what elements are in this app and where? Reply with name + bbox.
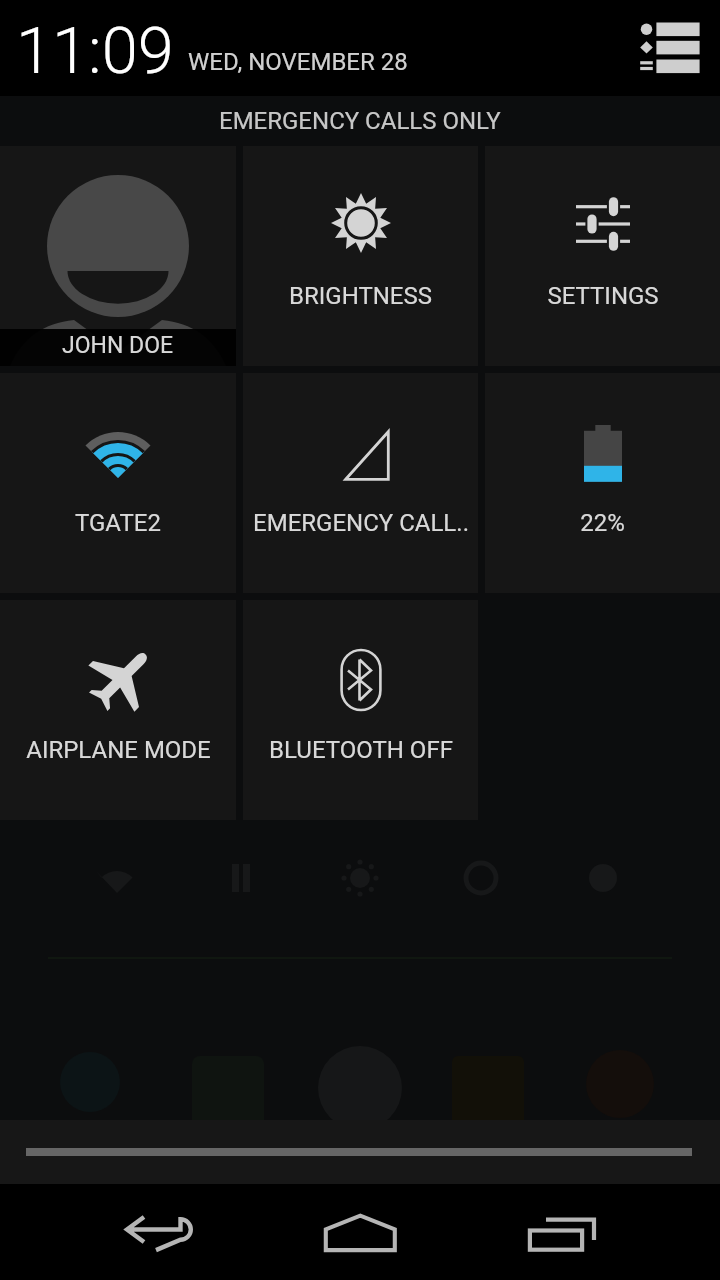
- button[interactable]: Notifications: [632, 10, 708, 86]
- button[interactable]: TGATE2: [0, 373, 236, 593]
- staticText: JOHN DOE: [62, 332, 174, 359]
- button[interactable]: EMERGENCY CALL..: [243, 373, 478, 593]
- staticText: BLUETOOTH OFF: [269, 736, 453, 764]
- button[interactable]: 22%: [485, 373, 720, 593]
- button[interactable]: Home: [300, 1184, 420, 1280]
- button[interactable]: BLUETOOTH OFF: [243, 600, 478, 820]
- staticText: AIRPLANE MODE: [26, 736, 211, 764]
- staticText: EMERGENCY CALLS ONLY: [219, 107, 501, 135]
- staticText: BRIGHTNESS: [289, 282, 432, 310]
- staticText: TGATE2: [75, 509, 161, 537]
- button[interactable]: Recent apps: [502, 1184, 622, 1280]
- staticText: 22%: [580, 509, 625, 537]
- button[interactable]: SETTINGS: [485, 146, 720, 366]
- button[interactable]: AIRPLANE MODE: [0, 600, 236, 820]
- staticText: WED, NOVEMBER 28: [188, 48, 408, 76]
- staticText: EMERGENCY CALL..: [253, 509, 469, 537]
- staticText: 11:09: [16, 13, 174, 89]
- button[interactable]: JOHN DOE: [0, 146, 236, 366]
- button[interactable]: Back: [101, 1184, 221, 1280]
- staticText: SETTINGS: [547, 282, 659, 310]
- button[interactable]: BRIGHTNESS: [243, 146, 478, 366]
